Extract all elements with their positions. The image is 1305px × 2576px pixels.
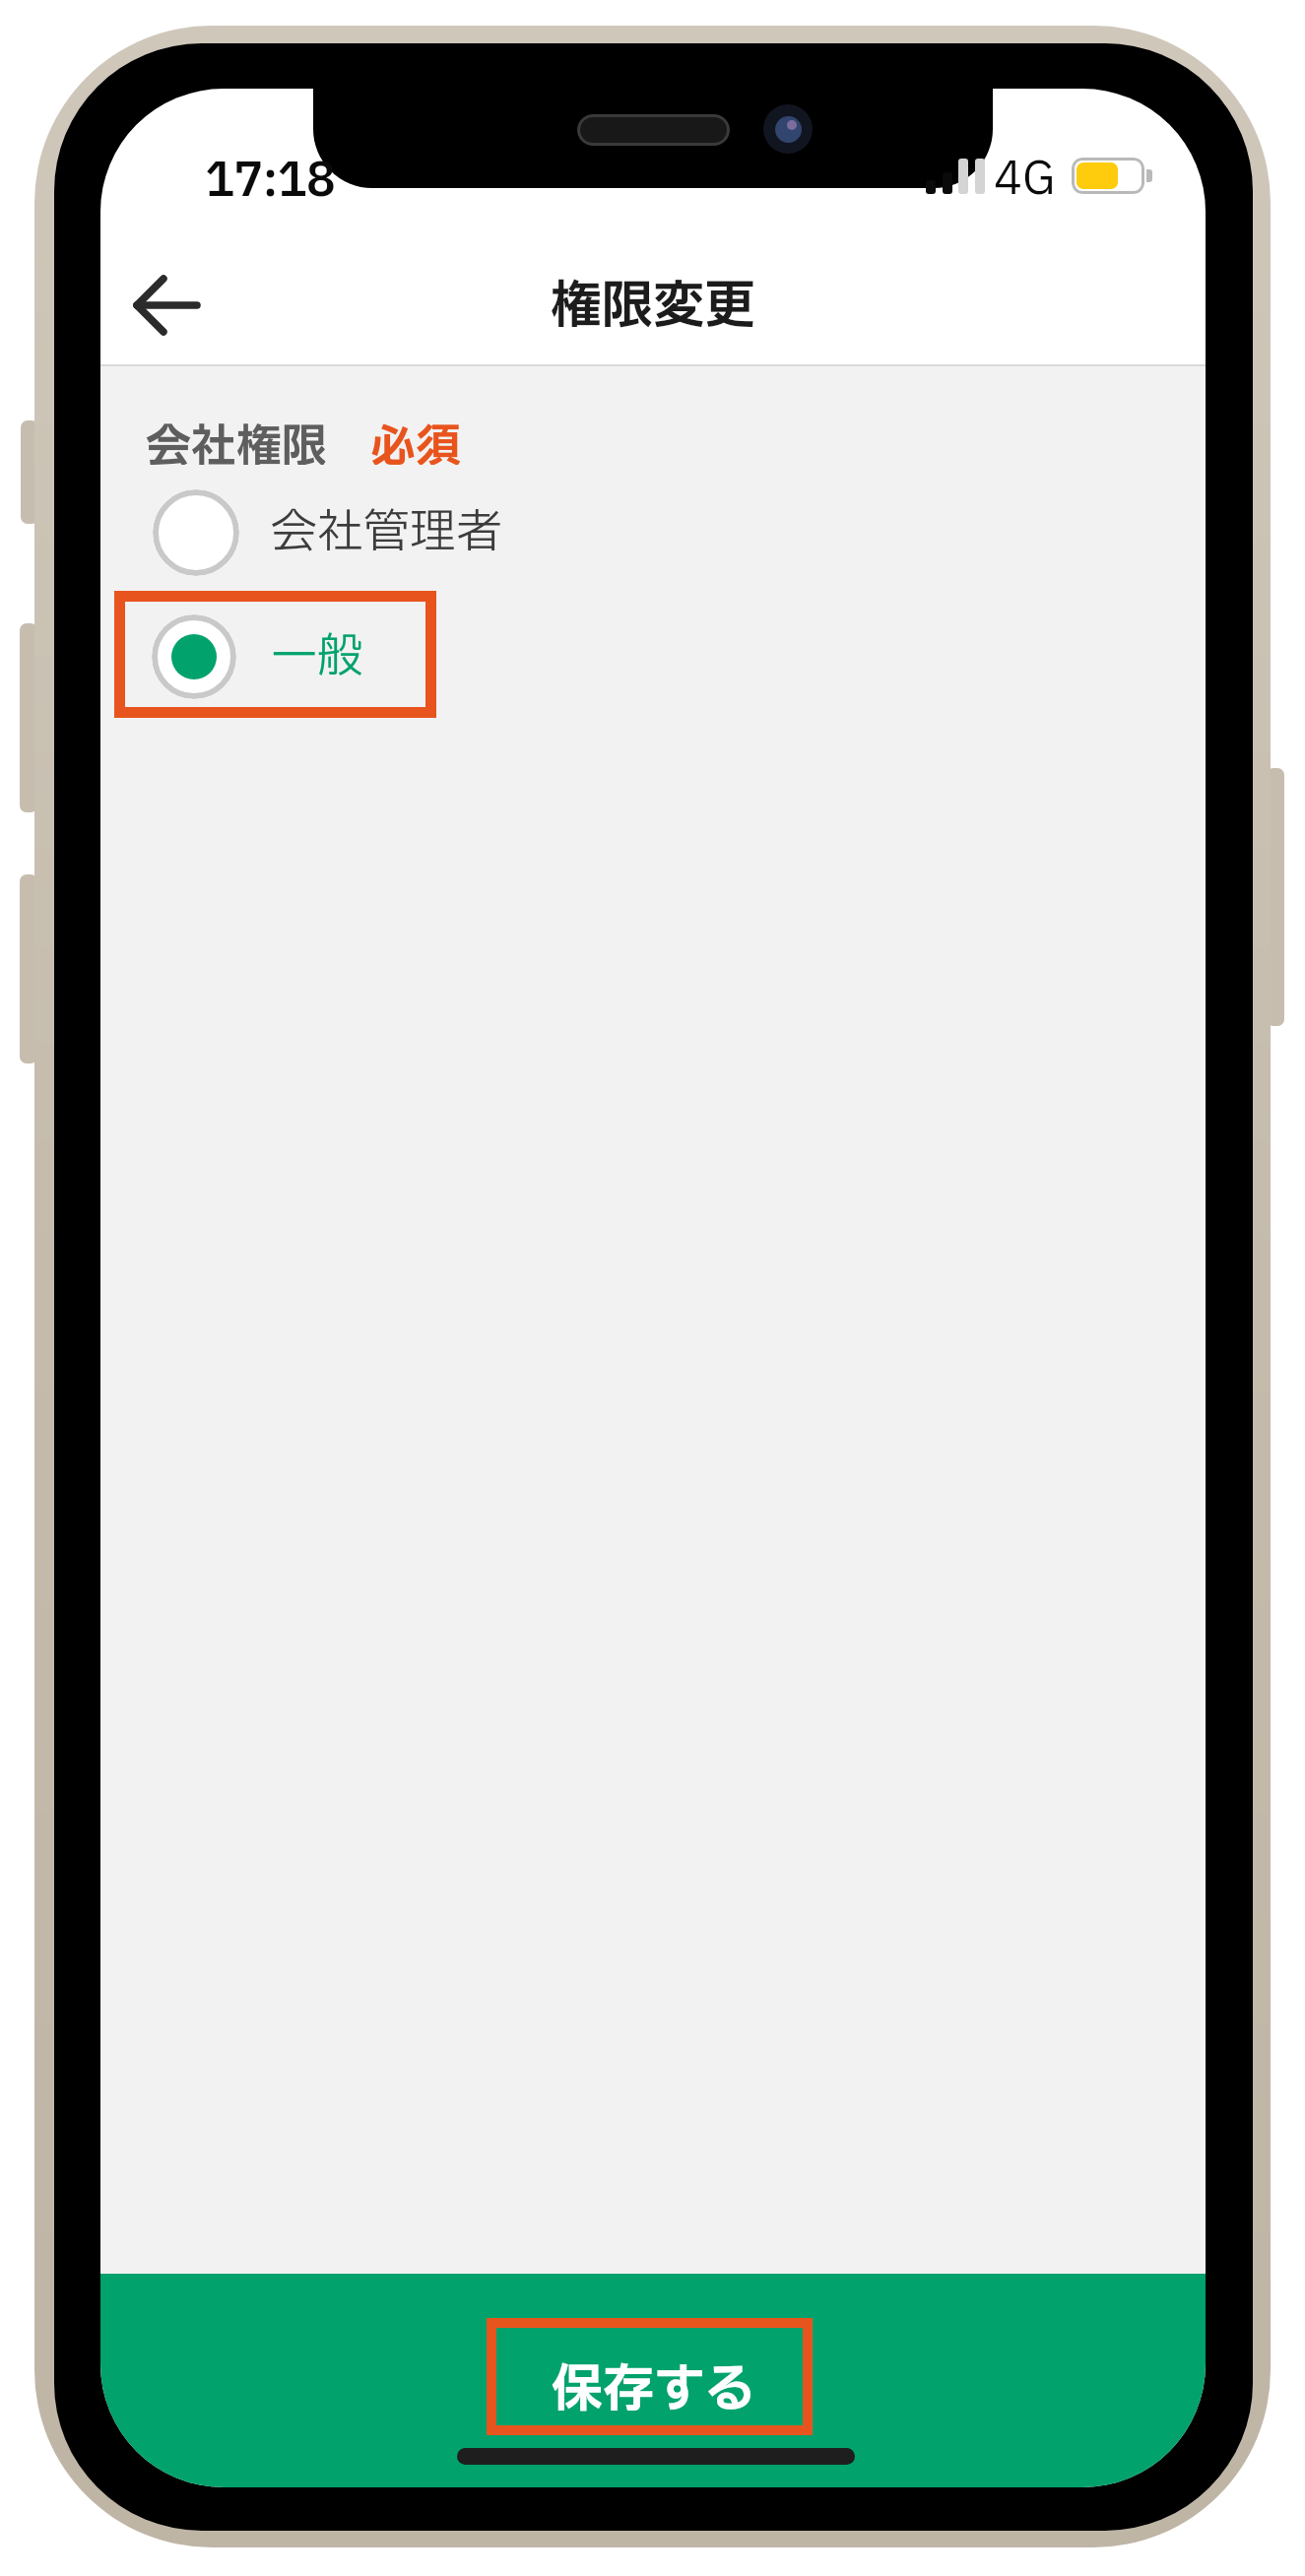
button[interactable]: 会社管理者: [153, 489, 665, 576]
staticText: 権限変更: [551, 269, 756, 333]
staticText: 必須: [370, 414, 461, 465]
staticText: 一般: [271, 622, 363, 691]
button[interactable]: 一般: [152, 613, 664, 700]
button[interactable]: [100, 2274, 1206, 2487]
staticText: 会社権限: [146, 414, 327, 465]
staticText: 4G: [994, 146, 1056, 205]
staticText: 会社管理者: [271, 498, 502, 567]
button[interactable]: [130, 270, 205, 341]
staticText: 保存する: [552, 2352, 755, 2415]
staticText: 17:18: [205, 146, 335, 205]
